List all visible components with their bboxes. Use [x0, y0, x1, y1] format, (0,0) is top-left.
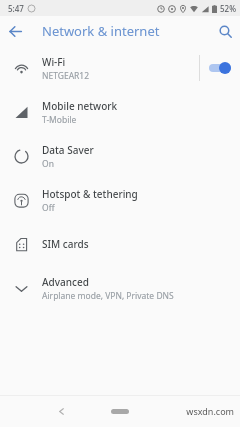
- staticText: SIM cards: [42, 237, 89, 251]
- button[interactable]: Advanced: [0, 266, 240, 310]
- button[interactable]: Back: [0, 16, 30, 46]
- button[interactable]: Toggle Wi-Fi: [200, 53, 240, 83]
- staticText: Off: [42, 202, 55, 214]
- staticText: Network & internet: [42, 22, 210, 40]
- button[interactable]: Back: [50, 400, 72, 422]
- staticText: On: [42, 158, 54, 170]
- staticText: wsxdn.com: [186, 405, 234, 417]
- button[interactable]: Search: [210, 16, 240, 46]
- staticText: Data Saver: [42, 143, 94, 157]
- button[interactable]: Mobile network: [0, 90, 240, 134]
- staticText: Hotspot & tethering: [42, 187, 138, 201]
- button[interactable]: Hotspot & tethering: [0, 178, 240, 222]
- staticText: Advanced: [42, 275, 89, 289]
- button[interactable]: Home: [105, 403, 135, 419]
- staticText: Wi-Fi: [42, 55, 66, 69]
- staticText: 5:47: [8, 3, 24, 14]
- staticText: Mobile network: [42, 99, 118, 113]
- button[interactable]: Wi-Fi: [0, 46, 240, 90]
- staticText: Airplane mode, VPN, Private DNS: [42, 290, 174, 302]
- staticText: T-Mobile: [42, 114, 77, 126]
- button[interactable]: SIM cards: [0, 222, 240, 266]
- staticText: NETGEAR12: [42, 70, 90, 82]
- button[interactable]: Data Saver: [0, 134, 240, 178]
- staticText: 52%: [220, 3, 236, 14]
